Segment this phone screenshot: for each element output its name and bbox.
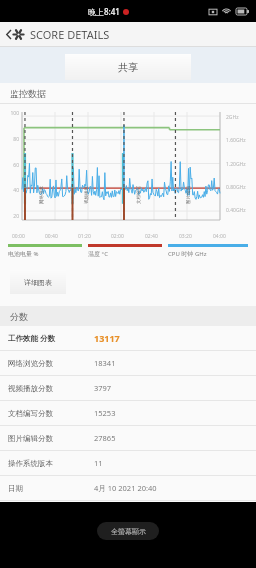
staticText: 03:20 [179, 233, 192, 240]
button[interactable]: Back [0, 22, 30, 46]
staticText: 温度 °C [88, 250, 168, 258]
staticText: 操作系统版本 [8, 459, 94, 468]
staticText: 02:40 [145, 233, 158, 240]
staticText: 全螢幕顯示 [111, 527, 146, 536]
staticText: 视频播放 [84, 186, 90, 204]
staticText: 1.20GHz [226, 161, 256, 168]
staticText: 图片编辑分数 [8, 434, 94, 443]
staticText: 0.80GHz [226, 184, 256, 191]
button[interactable]: 共享 [65, 54, 191, 80]
staticText: 04:00 [213, 233, 226, 240]
button[interactable]: 视频播放分数 [0, 376, 256, 400]
staticText: 工作效能 分数 [8, 333, 94, 343]
staticText: 80 [0, 136, 19, 143]
staticText: 图片编辑 [186, 186, 192, 204]
staticText: 分数 [10, 311, 28, 322]
staticText: 视频播放分数 [8, 384, 94, 393]
staticText: 13117 [94, 332, 120, 344]
staticText: 27865 [94, 433, 116, 443]
staticText: CPU 时钟 GHz [168, 250, 248, 258]
button[interactable]: 网络浏览分数 [0, 351, 256, 375]
staticText: 监控数据 [10, 88, 46, 99]
staticText: 3797 [94, 383, 112, 393]
button[interactable]: 全螢幕顯示 [97, 522, 159, 540]
staticText: 00:00 [12, 233, 25, 240]
staticText: 40 [0, 187, 19, 194]
staticText: 00:40 [45, 233, 58, 240]
staticText: 15253 [94, 408, 116, 418]
staticText: 详细图表 [24, 278, 52, 287]
staticText: 2GHz [226, 114, 256, 121]
staticText: 0.40GHz [226, 207, 256, 214]
staticText: 网络浏览分数 [8, 359, 94, 368]
staticText: 20 [0, 213, 19, 220]
staticText: 晚上8:41 [88, 6, 120, 17]
staticText: 文档编写分数 [8, 409, 94, 418]
staticText: 01:20 [78, 233, 91, 240]
staticText: 共享 [118, 61, 138, 74]
button[interactable]: 文档编写分数 [0, 401, 256, 425]
staticText: SCORE DETAILS [30, 27, 110, 42]
staticText: 文档编写 [136, 186, 142, 204]
staticText: 02:00 [111, 233, 124, 240]
button[interactable]: 操作系统版本 [0, 451, 256, 475]
staticText: 日期 [8, 484, 94, 493]
staticText: 网络浏览 [39, 186, 45, 204]
staticText: 18341 [94, 358, 116, 368]
button[interactable]: 工作效能 分数 [0, 326, 256, 350]
button[interactable]: 图片编辑分数 [0, 426, 256, 450]
staticText: 100 [0, 110, 19, 117]
staticText: 60 [0, 162, 19, 169]
staticText: 1.60GHz [226, 137, 256, 144]
staticText: 电池电量 % [8, 250, 88, 258]
staticText: 4月 10 2021 20:40 [94, 483, 157, 493]
staticText: 11 [94, 458, 103, 468]
button[interactable]: 日期 [0, 476, 256, 500]
button[interactable]: 详细图表 [10, 270, 66, 294]
